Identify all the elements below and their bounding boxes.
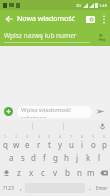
staticText: Enter: [96, 185, 108, 191]
button[interactable]: c: [37, 165, 49, 180]
button[interactable]: Shift: [0, 165, 13, 180]
staticText: 6: [59, 134, 62, 139]
staticText: w: [13, 139, 20, 150]
button[interactable]: .: [85, 180, 94, 196]
button[interactable]: ,: [16, 180, 25, 196]
staticText: h: [64, 152, 69, 163]
button[interactable]: 7: [66, 133, 77, 150]
staticText: 7: [70, 134, 73, 139]
button[interactable]: 9: [88, 133, 99, 150]
staticText: Nowa wiadomość: [17, 14, 75, 24]
staticText: o: [91, 139, 96, 150]
staticText: 1:48: [99, 3, 107, 8]
staticText: p: [102, 139, 107, 150]
button[interactable]: 1: [0, 133, 11, 150]
staticText: a: [9, 152, 14, 163]
button[interactable]: z: [13, 165, 25, 180]
staticText: i: [81, 139, 84, 150]
button[interactable]: n: [73, 165, 85, 180]
staticText: j: [76, 152, 79, 163]
button[interactable]: x: [25, 165, 37, 180]
button[interactable]: f: [39, 150, 50, 165]
staticText: 1: [4, 134, 7, 139]
staticText: q: [3, 139, 8, 150]
button[interactable]: k: [83, 150, 94, 165]
staticText: k: [86, 152, 91, 163]
button[interactable]: g: [50, 150, 61, 165]
staticText: e: [25, 139, 30, 150]
button[interactable]: j: [72, 150, 83, 165]
staticText: 3G: [76, 3, 82, 8]
staticText: b: [65, 167, 70, 178]
staticText: m: [87, 167, 95, 178]
staticText: ,: [20, 183, 22, 193]
button[interactable]: [63, 120, 94, 133]
button[interactable]: l: [94, 150, 105, 165]
staticText: s: [21, 152, 25, 163]
staticText: 8: [81, 134, 84, 139]
staticText: z: [17, 167, 21, 178]
button[interactable]: ?123: [0, 180, 16, 196]
staticText: 3: [26, 134, 29, 139]
staticText: y: [58, 139, 63, 150]
button[interactable]: Send: [94, 105, 107, 118]
staticText: n: [77, 167, 82, 178]
button[interactable]: d: [28, 150, 39, 165]
button[interactable]: Backspace: [97, 165, 110, 180]
button[interactable]: a: [5, 150, 17, 165]
button[interactable]: 3: [22, 133, 33, 150]
button[interactable]: 0: [99, 133, 110, 150]
staticText: d: [31, 152, 36, 163]
button[interactable]: 2: [11, 133, 22, 150]
button[interactable]: More options: [98, 13, 110, 25]
button[interactable]: Add recipient: [94, 30, 108, 44]
staticText: g: [53, 152, 58, 163]
staticText: 5: [48, 134, 51, 139]
button[interactable]: Send later: [82, 11, 98, 27]
button[interactable]: h: [61, 150, 72, 165]
button[interactable]: Wpisz wiadomość tekstową: [17, 106, 92, 118]
staticText: Wpisz nazwę lub numer: [4, 31, 77, 40]
button[interactable]: 5: [44, 133, 55, 150]
staticText: t: [48, 139, 51, 150]
staticText: 2: [15, 134, 18, 139]
staticText: x: [29, 167, 34, 178]
staticText: l: [98, 152, 101, 163]
staticText: .: [89, 183, 91, 193]
staticText: c: [41, 167, 45, 178]
staticText: r: [37, 139, 41, 150]
button[interactable]: Add attachment: [3, 106, 14, 117]
button[interactable]: 6: [55, 133, 66, 150]
staticText: v: [53, 167, 58, 178]
staticText: 4: [38, 134, 41, 139]
button[interactable]: 8: [77, 133, 88, 150]
staticText: 0: [103, 134, 106, 139]
staticText: Wpisz wiadomość tekstową: [21, 106, 92, 118]
staticText: u: [69, 139, 74, 150]
button[interactable]: Back: [0, 10, 17, 27]
button[interactable]: Enter: [94, 180, 110, 196]
button[interactable]: b: [61, 165, 73, 180]
button[interactable]: [32, 120, 63, 133]
button[interactable]: m: [85, 165, 97, 180]
staticText: ?123: [3, 185, 14, 192]
staticText: f: [43, 152, 46, 163]
staticText: 9: [92, 134, 95, 139]
button[interactable]: Voice input: [94, 120, 110, 133]
button[interactable]: 4: [33, 133, 44, 150]
button[interactable]: v: [49, 165, 61, 180]
button[interactable]: s: [17, 150, 28, 165]
